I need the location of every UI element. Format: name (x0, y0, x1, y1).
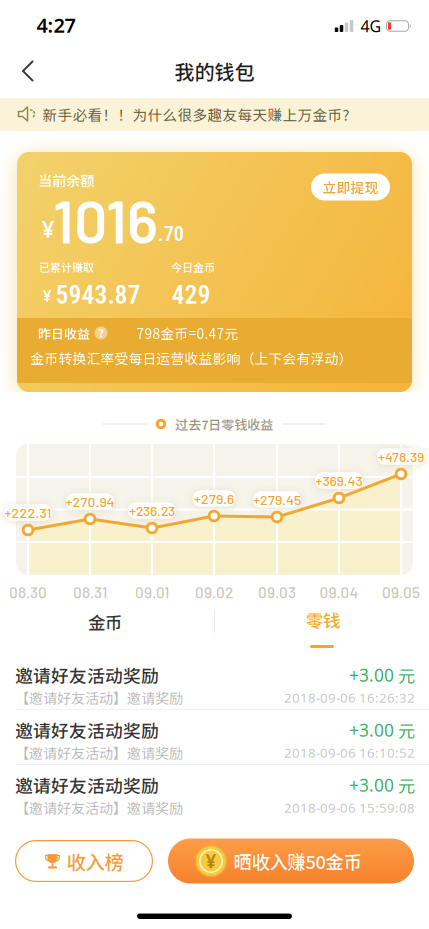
staticText: 【邀请好友活动】邀请奖励 (15, 797, 183, 818)
button[interactable]: 邀请好友活动奖励 (0, 765, 429, 820)
staticText: 09.03 (258, 583, 296, 601)
staticText: +279.45 (253, 491, 301, 508)
button[interactable] (6, 44, 50, 98)
staticText: +369.43 (315, 472, 362, 489)
staticText: +3.00 (349, 718, 394, 741)
staticText: 09.04 (319, 583, 358, 601)
staticText: ¥ (41, 214, 54, 244)
staticText: 元 (394, 663, 415, 687)
staticText: 晒收入赚50金币 (233, 848, 361, 874)
staticText: 09.02 (195, 583, 233, 601)
staticText: 798金币=0.47元 (136, 323, 238, 343)
button[interactable]: 邀请好友活动奖励 (0, 655, 429, 710)
staticText: 我的钱包 (174, 57, 254, 85)
staticText: 当前余额 (38, 170, 94, 190)
staticText: 08.31 (73, 583, 107, 601)
staticText: 零钱 (306, 607, 340, 633)
staticText: 今日金币 (171, 259, 215, 275)
staticText: 新手必看！！为什么很多趣友每天赚上万金币? (42, 104, 349, 125)
staticText: +236.23 (129, 502, 175, 519)
staticText: 【邀请好友活动】邀请奖励 (15, 742, 183, 763)
staticText: 5943.87 (55, 280, 140, 310)
staticText: +270.94 (65, 493, 114, 510)
staticText: 1016 (53, 185, 158, 255)
staticText: +279.6 (194, 490, 234, 507)
button[interactable]: 金币 (5, 602, 205, 642)
button[interactable]: 邀请好友活动奖励 (0, 710, 429, 765)
button[interactable]: ¥ (168, 838, 414, 883)
staticText: 立即提现 (322, 177, 378, 197)
staticText: ¥ (205, 849, 216, 873)
staticText: 邀请好友活动奖励 (15, 717, 159, 743)
staticText: 2018-09-06 15:59:08 (284, 799, 415, 816)
staticText: +478.39 (378, 448, 424, 465)
staticText: 收入榜 (66, 847, 123, 875)
staticText: 08.30 (9, 583, 47, 601)
staticText: 已累计赚取 (39, 259, 94, 275)
staticText: ? (98, 326, 103, 340)
button[interactable]: 新手必看！！为什么很多趣友每天赚上万金币? (0, 98, 429, 131)
staticText: .70 (157, 222, 183, 246)
button[interactable]: 立即提现 (311, 173, 390, 200)
button[interactable]: 零钱 (223, 602, 423, 655)
staticText: 金币转换汇率受每日运营收益影响（上下会有浮动） (30, 348, 352, 368)
staticText: 2018-09-06 16:26:32 (284, 689, 415, 706)
staticText: 元 (394, 718, 415, 742)
staticText: 2018-09-06 16:10:52 (284, 744, 415, 761)
staticText: 邀请好友活动奖励 (15, 772, 159, 798)
staticText: 09.01 (135, 583, 169, 601)
staticText: 429 (171, 280, 210, 310)
staticText: 4G (360, 15, 381, 37)
staticText: +3.00 (349, 663, 394, 686)
button[interactable]: 收入榜 (15, 840, 153, 882)
staticText: +3.00 (349, 773, 394, 796)
staticText: 元 (394, 773, 415, 797)
staticText: 昨日收益 (38, 324, 90, 342)
staticText: ¥ (42, 285, 51, 306)
staticText: 过去7日零钱收益 (175, 415, 273, 433)
staticText: 4:27 (36, 12, 75, 38)
staticText: 09.05 (382, 583, 420, 601)
staticText: 【邀请好友活动】邀请奖励 (15, 687, 183, 708)
staticText: 金币 (88, 609, 122, 635)
staticText: +222.31 (4, 504, 51, 521)
staticText: 邀请好友活动奖励 (15, 662, 159, 688)
